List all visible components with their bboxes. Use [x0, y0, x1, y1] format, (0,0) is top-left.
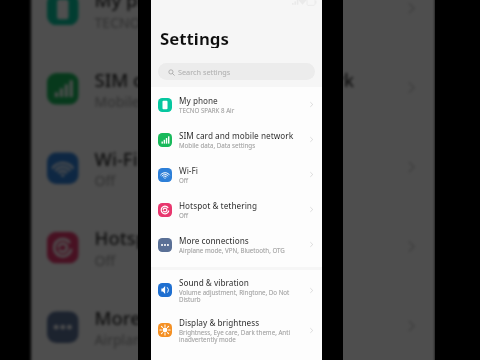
staticText: Wi-Fi: [179, 165, 198, 176]
button[interactable]: Sound & vibration: [151, 270, 322, 310]
button[interactable]: My phone: [31, 0, 435, 48]
staticText: Off: [95, 170, 117, 189]
staticText: Off: [179, 211, 189, 219]
button[interactable]: Hotspot & tethering: [31, 207, 435, 286]
staticText: Mobile data, Data settings: [179, 141, 256, 149]
staticText: Off: [95, 250, 117, 268]
button[interactable]: SIM card and mobile network: [31, 48, 435, 127]
button[interactable]: More connections: [151, 227, 322, 262]
staticText: My phone: [179, 95, 218, 106]
staticText: Sound & vibration: [179, 277, 249, 288]
staticText: Hotspot & tethering: [179, 200, 257, 211]
staticText: SIM card and mobile network: [179, 130, 294, 141]
button[interactable]: My phone: [151, 87, 322, 122]
staticText: Mobile data, Data settings: [95, 91, 269, 109]
button[interactable]: More connections: [31, 286, 435, 360]
button[interactable]: Wi-Fi: [31, 127, 435, 207]
button[interactable]: Display & brightness: [151, 310, 322, 350]
staticText: Off: [179, 176, 189, 184]
staticText: More connections: [95, 304, 253, 329]
button[interactable]: Wi-Fi: [151, 157, 322, 192]
staticText: TECNO SPARK 8 Air: [95, 12, 222, 30]
staticText: Volume adjustment, Ringtone, Do Not Dist…: [179, 288, 304, 304]
staticText: Settings: [160, 27, 229, 48]
staticText: Hotspot & tethering: [95, 225, 272, 250]
staticText: Display & brightness: [179, 317, 260, 328]
staticText: Wi-Fi: [95, 145, 138, 170]
staticText: Airplane mode, VPN, Bluetooth, OTG: [179, 246, 285, 254]
button[interactable]: Hotspot & tethering: [151, 192, 322, 227]
staticText: TECNO SPARK 8 Air: [179, 106, 235, 114]
button[interactable]: SIM card and mobile network: [151, 122, 322, 157]
staticText: More connections: [179, 235, 249, 246]
staticText: Brightness, Eye care, Dark theme, Anti i…: [179, 328, 304, 344]
staticText: My phone: [95, 0, 183, 12]
button[interactable]: Search settings: [158, 63, 315, 80]
staticText: SIM card and mobile network: [95, 66, 356, 91]
staticText: Airplane mode, VPN, Bluetooth, OTG: [95, 329, 335, 348]
staticText: Search settings: [178, 67, 231, 77]
